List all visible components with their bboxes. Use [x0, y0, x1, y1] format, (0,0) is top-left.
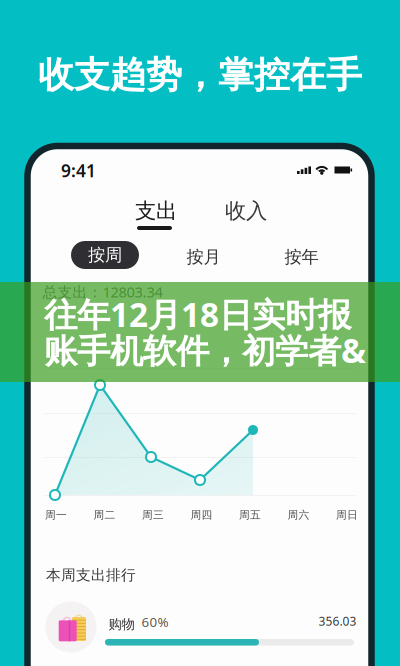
staticText: 收支趋势，掌控在手 — [38, 53, 362, 97]
staticText: 按月 — [186, 246, 220, 268]
staticText: 60% — [141, 613, 168, 631]
staticText: 购物 — [108, 616, 134, 632]
staticText: 支出 — [135, 198, 177, 224]
staticText: 总支出：12803.34 — [42, 282, 162, 301]
button[interactable]: 收入 — [214, 196, 278, 226]
button[interactable]: 按月 — [178, 243, 228, 271]
staticText: 往年12月18日实时报 — [44, 292, 351, 336]
staticText: 周日 — [336, 508, 358, 521]
staticText: 本周支出排行 — [46, 566, 136, 584]
staticText: 356.03 — [318, 613, 356, 629]
button[interactable]: 按周 — [71, 241, 139, 269]
staticText: 周五 — [239, 508, 261, 521]
staticText: 周一 — [45, 508, 67, 521]
staticText: 收入 — [225, 198, 267, 224]
button[interactable]: 按年 — [276, 243, 326, 271]
staticText: 周六 — [287, 508, 309, 521]
staticText: 按年 — [284, 246, 318, 268]
staticText: 周三 — [142, 508, 164, 521]
staticText: 按周 — [88, 244, 122, 266]
staticText: 周二 — [93, 508, 115, 521]
button[interactable]: 购物 — [27, 146, 371, 666]
staticText: 周四 — [190, 508, 212, 521]
button[interactable]: 支出 — [124, 196, 188, 226]
staticText: 账手机软件，初学者& — [44, 328, 366, 372]
staticText: 9:41 — [61, 159, 96, 182]
